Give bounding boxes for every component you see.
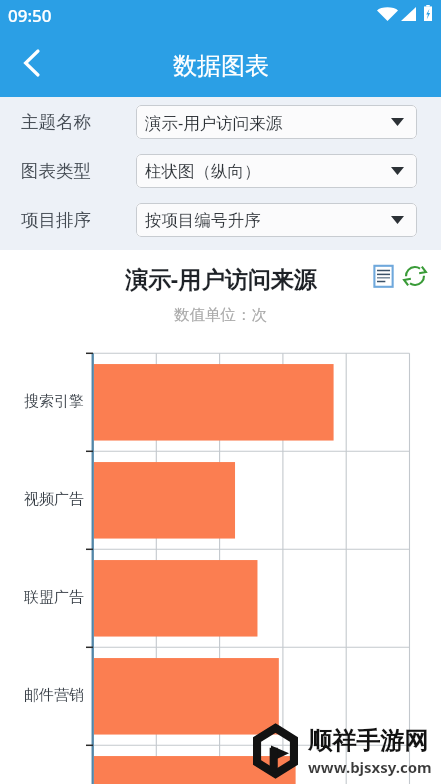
staticText: 顺祥手游网 xyxy=(308,726,428,756)
staticText: 柱状图（纵向） xyxy=(145,161,261,182)
staticText: 按项目编号升序 xyxy=(145,210,261,231)
staticText: 视频广告 xyxy=(0,490,84,509)
staticText: 数据图表 xyxy=(173,51,269,81)
staticText: 演示-用户访问来源 xyxy=(0,263,441,294)
staticText: 主题名称 xyxy=(21,111,91,133)
staticText: 项目排序 xyxy=(21,209,91,231)
button[interactable]: Data table xyxy=(372,264,396,288)
staticText: 演示-用户访问来源 xyxy=(145,111,283,134)
button[interactable]: 柱状图（纵向） xyxy=(136,154,417,188)
other: Logo xyxy=(253,724,298,778)
button[interactable]: Refresh xyxy=(403,264,427,288)
button[interactable]: 按项目编号升序 xyxy=(136,203,417,237)
staticText: 09:50 xyxy=(8,4,52,27)
button[interactable]: Back xyxy=(8,40,54,86)
staticText: 数值单位：次 xyxy=(0,305,441,325)
staticText: 邮件营销 xyxy=(0,686,84,705)
staticText: www.bjsxsy.com xyxy=(308,757,432,777)
staticText: 图表类型 xyxy=(21,160,91,182)
staticText: 搜索引擎 xyxy=(0,392,84,411)
staticText: 联盟广告 xyxy=(0,588,84,607)
button[interactable]: 演示-用户访问来源 xyxy=(136,105,417,139)
